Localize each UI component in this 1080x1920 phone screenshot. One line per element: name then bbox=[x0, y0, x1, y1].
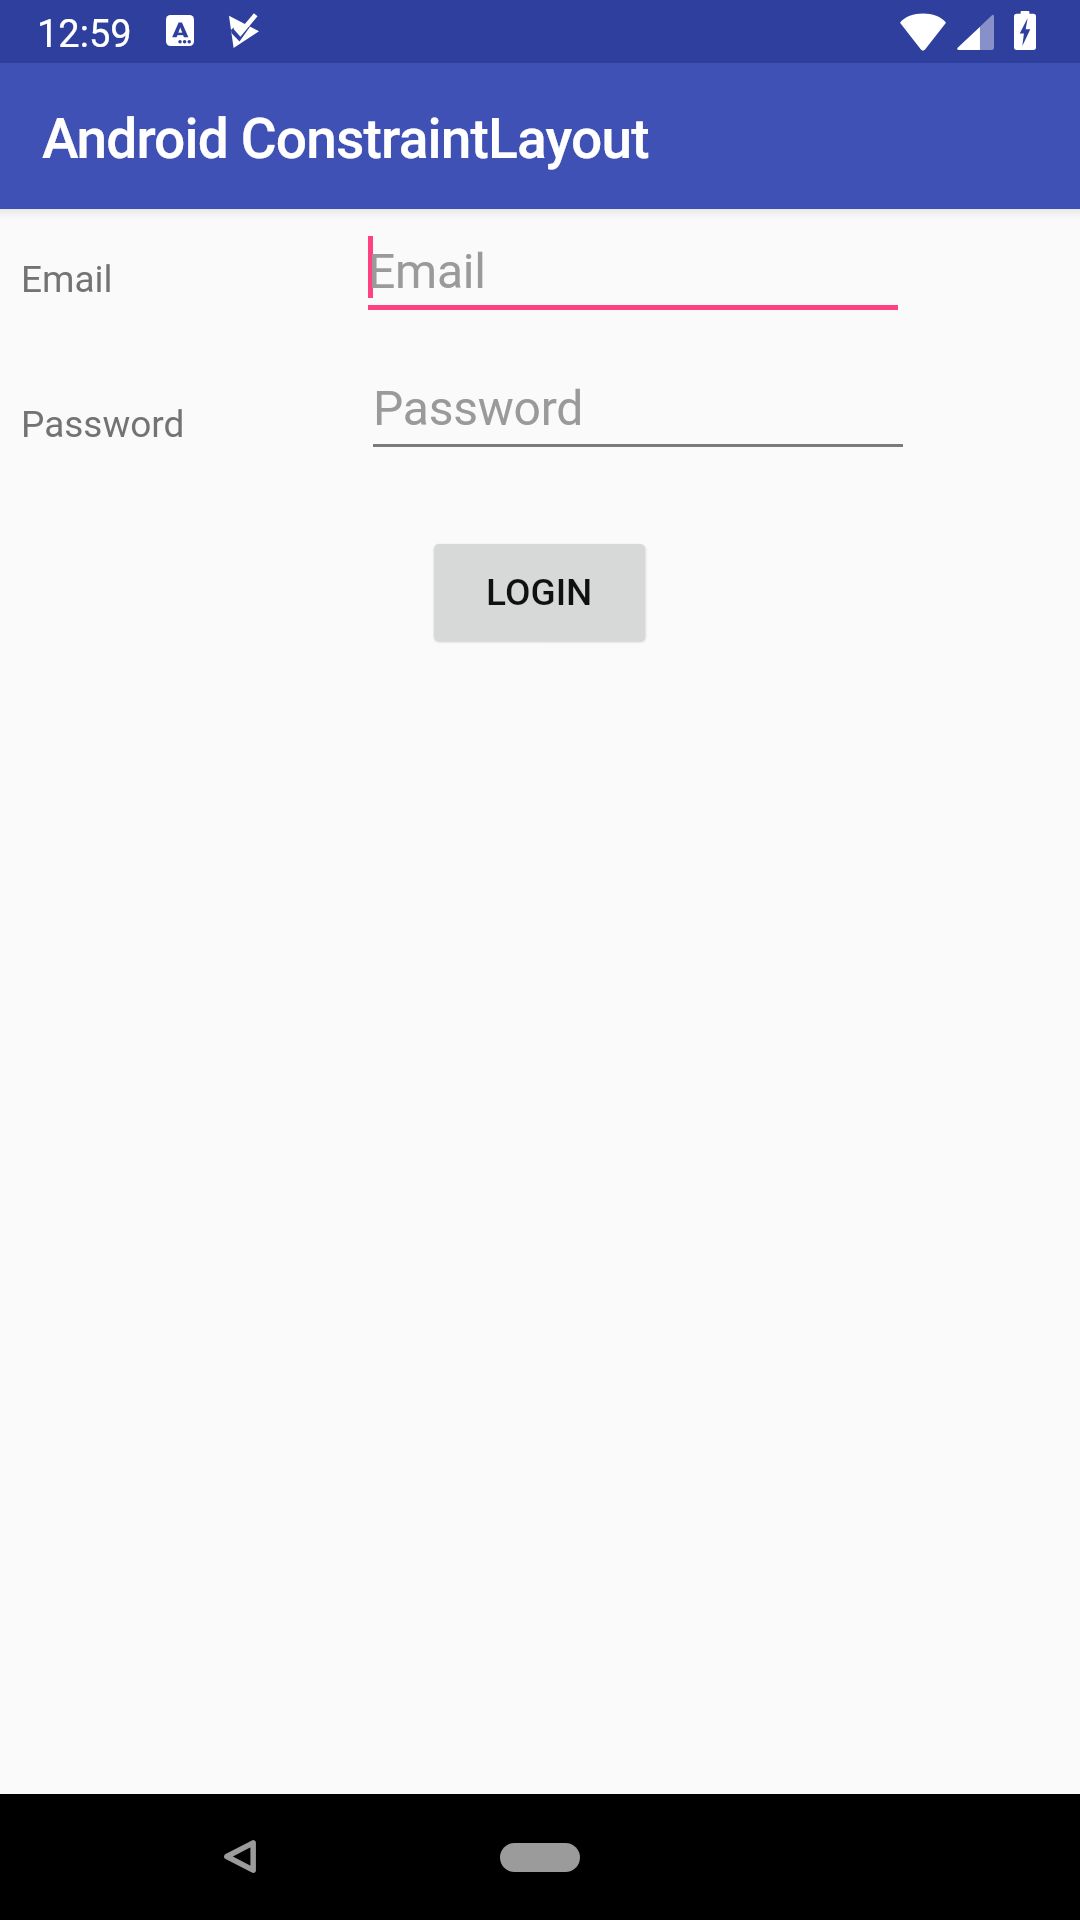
staticText: Android ConstraintLayout bbox=[42, 107, 649, 171]
staticText: Password bbox=[21, 403, 185, 446]
button[interactable]: Email bbox=[368, 230, 898, 310]
staticText: LOGIN bbox=[486, 571, 593, 614]
button[interactable]: Back bbox=[210, 1826, 270, 1886]
staticText: Email bbox=[368, 243, 486, 299]
staticText: Password bbox=[373, 380, 584, 436]
staticText: 12:59 bbox=[37, 12, 132, 57]
button[interactable]: Password bbox=[373, 366, 903, 447]
button[interactable]: Home bbox=[470, 1818, 610, 1896]
button[interactable]: LOGIN bbox=[434, 544, 645, 641]
staticText: Email bbox=[21, 258, 113, 301]
